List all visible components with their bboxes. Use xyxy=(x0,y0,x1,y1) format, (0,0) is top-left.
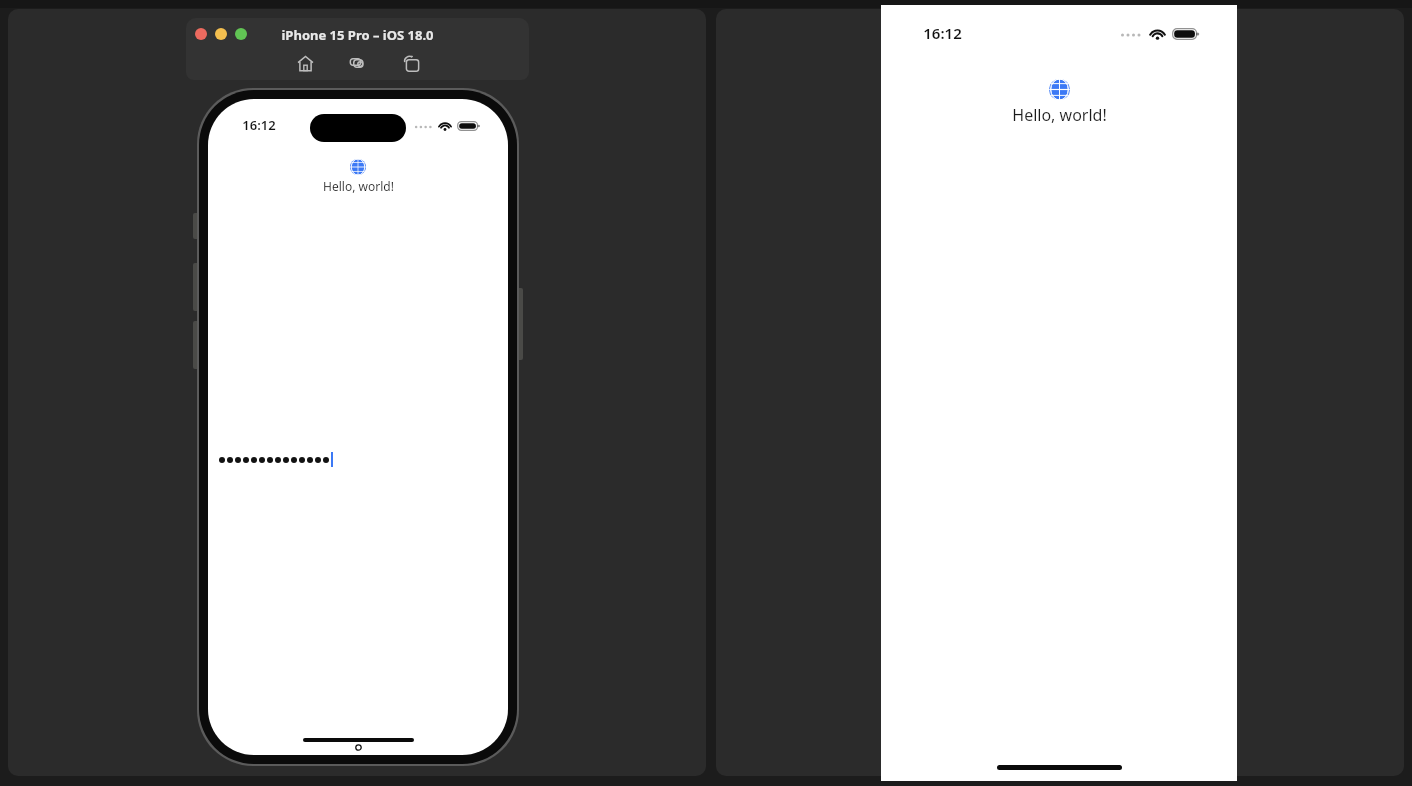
staticText: 16:12 xyxy=(923,23,962,43)
button[interactable]: Zoom xyxy=(235,28,247,40)
button[interactable]: Minimize xyxy=(215,28,227,40)
staticText: 16:12 xyxy=(242,116,276,134)
button[interactable]: Screenshot xyxy=(346,51,370,75)
staticText: Hello, world! xyxy=(1012,104,1107,126)
staticText: Hello, world! xyxy=(323,178,394,194)
button[interactable]: Home xyxy=(293,51,317,75)
staticText: iPhone 15 Pro – iOS 18.0 xyxy=(281,26,434,44)
button[interactable]: Rotate xyxy=(399,51,423,75)
button[interactable]: Close xyxy=(195,28,207,40)
